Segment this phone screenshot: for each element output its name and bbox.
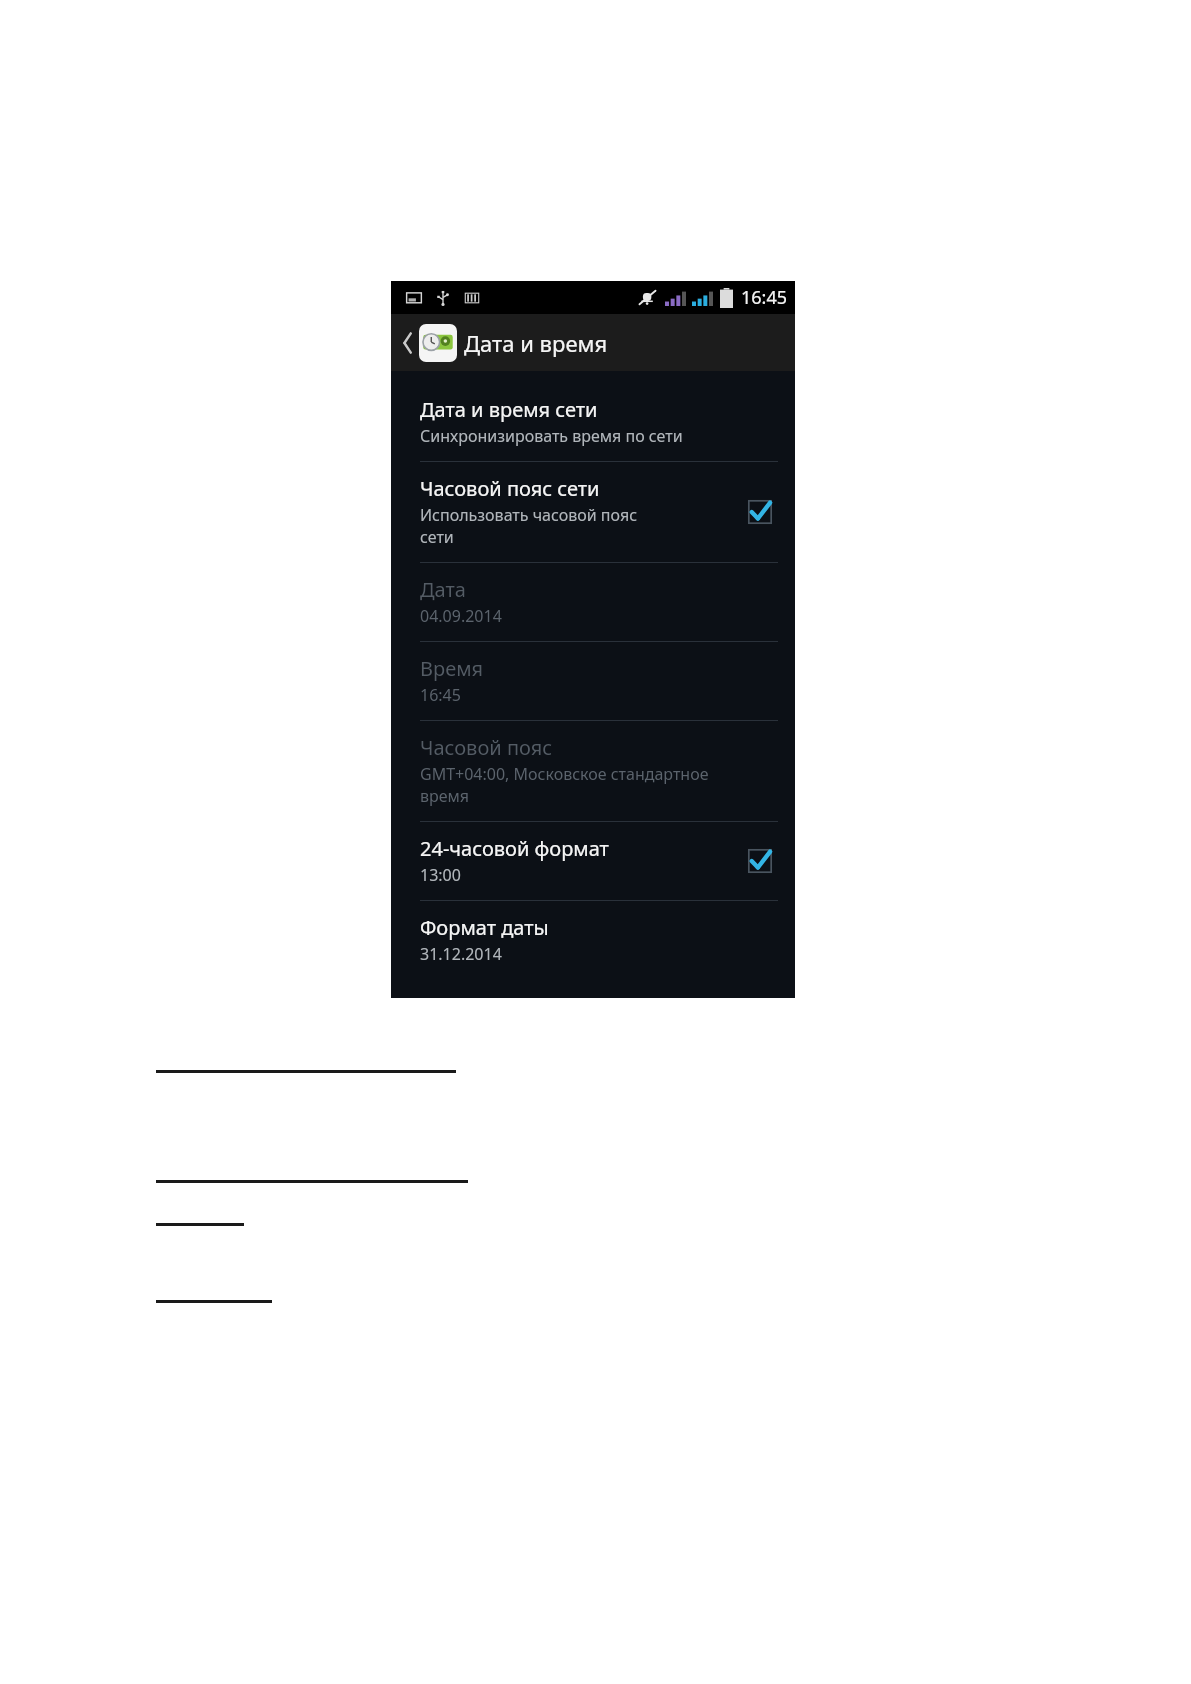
staticText: Дата и время сети: [420, 396, 598, 423]
staticText: Использовать часовой пояс сети: [420, 504, 638, 548]
button[interactable]: Часовой пояс: [391, 721, 795, 821]
button[interactable]: Часовой пояс сети: [391, 462, 795, 562]
staticText: 24-часовой формат: [420, 835, 609, 862]
button[interactable]: Дата: [391, 563, 795, 641]
staticText: 31.12.2014: [420, 943, 502, 965]
button[interactable]: Время: [391, 642, 795, 720]
button[interactable]: Дата и время сети: [391, 383, 795, 461]
button[interactable]: Toggle Часовой пояс сети: [742, 494, 778, 530]
staticText: Формат даты: [420, 914, 549, 941]
button[interactable]: Toggle 24-часовой формат: [742, 843, 778, 879]
staticText: Дата и время: [464, 328, 608, 358]
staticText: Синхронизировать время по сети: [420, 425, 683, 447]
staticText: 13:00: [420, 864, 461, 886]
staticText: 16:45: [741, 285, 788, 310]
other: Back: [396, 321, 418, 365]
staticText: 04.09.2014: [420, 605, 502, 627]
button[interactable]: Формат даты: [391, 901, 795, 979]
button[interactable]: Back: [391, 314, 795, 371]
staticText: Часовой пояс: [420, 734, 553, 761]
staticText: GMT+04:00, Московское стандартное время: [420, 763, 709, 807]
button[interactable]: 24-часовой формат: [391, 822, 795, 900]
staticText: Время: [420, 655, 484, 682]
staticText: Часовой пояс сети: [420, 475, 600, 502]
staticText: 16:45: [420, 684, 461, 706]
staticText: Дата: [420, 576, 466, 603]
